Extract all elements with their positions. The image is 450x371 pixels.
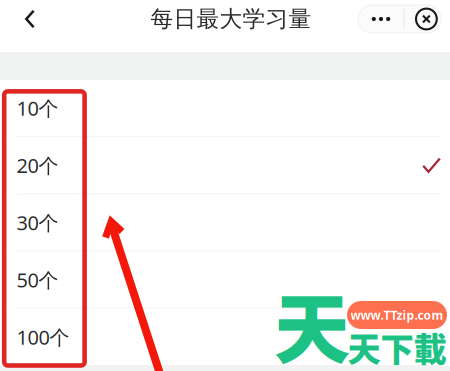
button[interactable]: 50个	[0, 252, 450, 309]
button[interactable]: 10个	[0, 80, 450, 137]
button[interactable]: 30个	[0, 194, 450, 252]
staticText: 天	[274, 269, 350, 371]
button[interactable]: More options and close	[358, 5, 441, 33]
staticText: 20个	[16, 152, 58, 179]
staticText: 50个	[16, 266, 58, 293]
staticText: www.TTzip.com	[350, 307, 443, 323]
staticText: 天下載	[347, 323, 446, 371]
button[interactable]: 100个	[0, 309, 450, 366]
staticText: 每日最大学习量	[150, 5, 311, 33]
staticText: 10个	[16, 95, 58, 121]
staticText: 30个	[16, 209, 58, 236]
staticText: 100个	[16, 324, 69, 350]
button[interactable]: Back	[13, 0, 47, 45]
button[interactable]: 20个	[0, 137, 450, 194]
